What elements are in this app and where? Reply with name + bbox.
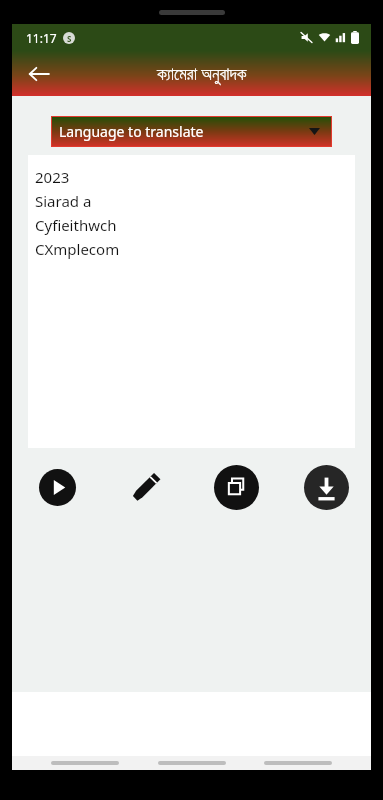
button[interactable]: Navigation [264, 761, 332, 765]
button[interactable]: Edit [124, 464, 170, 510]
button[interactable]: Navigation [158, 761, 226, 765]
staticText: 2023 [35, 167, 70, 187]
staticText: S [67, 33, 72, 44]
staticText: Siarad a [35, 191, 92, 211]
staticText: ক্যামেরা অনুবাদক [157, 62, 247, 85]
button[interactable]: Navigation [51, 761, 119, 765]
staticText: 11:17 [26, 30, 57, 46]
button[interactable]: Language to translate [51, 116, 332, 147]
button[interactable]: Back [18, 53, 60, 95]
staticText: Language to translate [59, 122, 204, 141]
staticText: CXmplecom [35, 239, 120, 259]
button[interactable]: Copy [213, 464, 259, 510]
button[interactable]: Play [34, 464, 80, 510]
button[interactable]: Download [303, 464, 349, 510]
staticText: Cyfieithwch [35, 215, 117, 235]
